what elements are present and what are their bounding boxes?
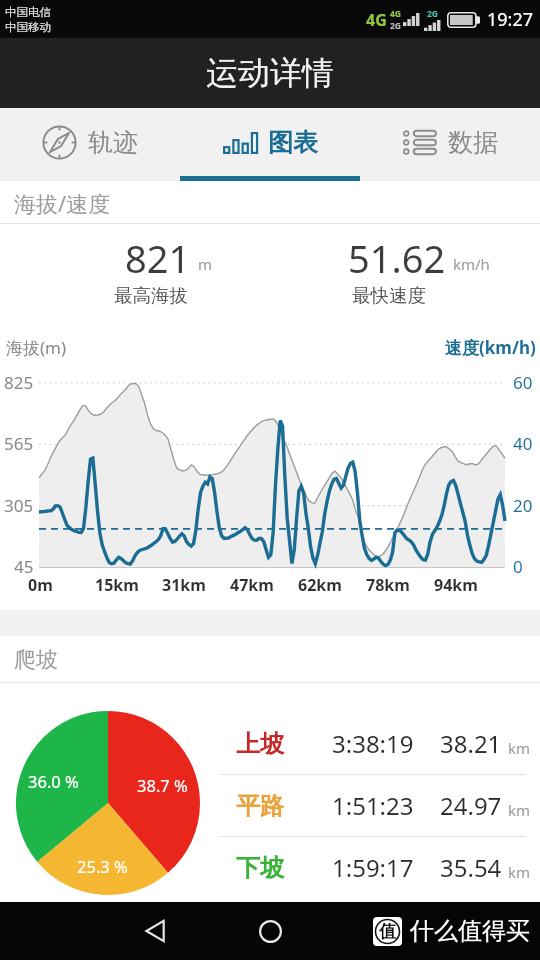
button[interactable]: Home [244,905,296,957]
staticText: 78km [366,574,434,596]
staticText: 中国移动 [5,20,51,34]
staticText: 0 [513,555,523,578]
staticText: km [508,862,531,882]
staticText: 值 [379,921,396,942]
button[interactable]: 821 [51,224,251,318]
button[interactable]: 下坡 [216,837,540,898]
staticText: 0m [28,574,95,596]
staticText: 821 [125,232,191,284]
button[interactable]: Track [0,108,180,181]
button[interactable]: Back [130,905,182,957]
staticText: 上坡 [236,729,332,759]
staticText: 4G [366,9,387,31]
staticText: 图表 [268,127,318,158]
staticText: 825 [4,371,34,394]
staticText: 3:38:19 [332,727,440,760]
staticText: 24.97 [440,789,502,822]
staticText: 31km [162,574,230,596]
button[interactable]: 51.62 [289,224,489,318]
staticText: 运动详情 [206,53,334,93]
staticText: 数据 [448,127,498,158]
staticText: 38.7 % [137,774,188,796]
staticText: 25.3 % [77,855,128,877]
staticText: 60 [513,371,533,394]
staticText: 速度(km/h) [445,336,536,359]
other: Data [403,129,437,156]
staticText: 最高海拔 [114,284,188,307]
other: Chart [223,132,257,154]
other: Track [42,125,77,160]
staticText: 62km [298,574,366,596]
staticText: 下坡 [236,853,332,883]
staticText: 47km [230,574,298,596]
staticText: 海拔/速度 [14,188,111,218]
button[interactable]: Data [360,108,540,181]
staticText: 爬坡 [14,646,58,674]
staticText: km [508,738,531,758]
staticText: 36.0 % [28,770,79,792]
staticText: 565 [4,432,34,455]
staticText: km/h [453,254,490,274]
staticText: 305 [4,494,34,517]
button[interactable]: 平路 [216,775,540,836]
staticText: 什么值得买 [410,916,530,946]
staticText: 45 [14,555,34,578]
staticText: 20 [513,494,533,517]
staticText: 1:51:23 [332,789,440,822]
staticText: m [198,254,213,274]
staticText: km [508,800,531,820]
staticText: 1:59:17 [332,851,440,884]
staticText: 51.62 [348,232,446,284]
staticText: 轨迹 [88,127,138,158]
staticText: 2G [390,20,402,32]
staticText: 海拔(m) [6,336,67,359]
button[interactable]: 上坡 [216,713,540,774]
staticText: 35.54 [440,851,502,884]
staticText: 最快速度 [352,284,426,307]
staticText: 38.21 [440,727,502,760]
staticText: 4G [390,8,402,20]
staticText: 40 [513,432,533,455]
staticText: 平路 [236,791,332,821]
staticText: 15km [95,574,162,596]
staticText: 19:27 [487,7,534,32]
staticText: 94km [434,574,502,596]
staticText: 中国电信 [5,5,51,19]
button[interactable]: Chart [180,108,360,181]
staticText: 2G [427,8,439,20]
